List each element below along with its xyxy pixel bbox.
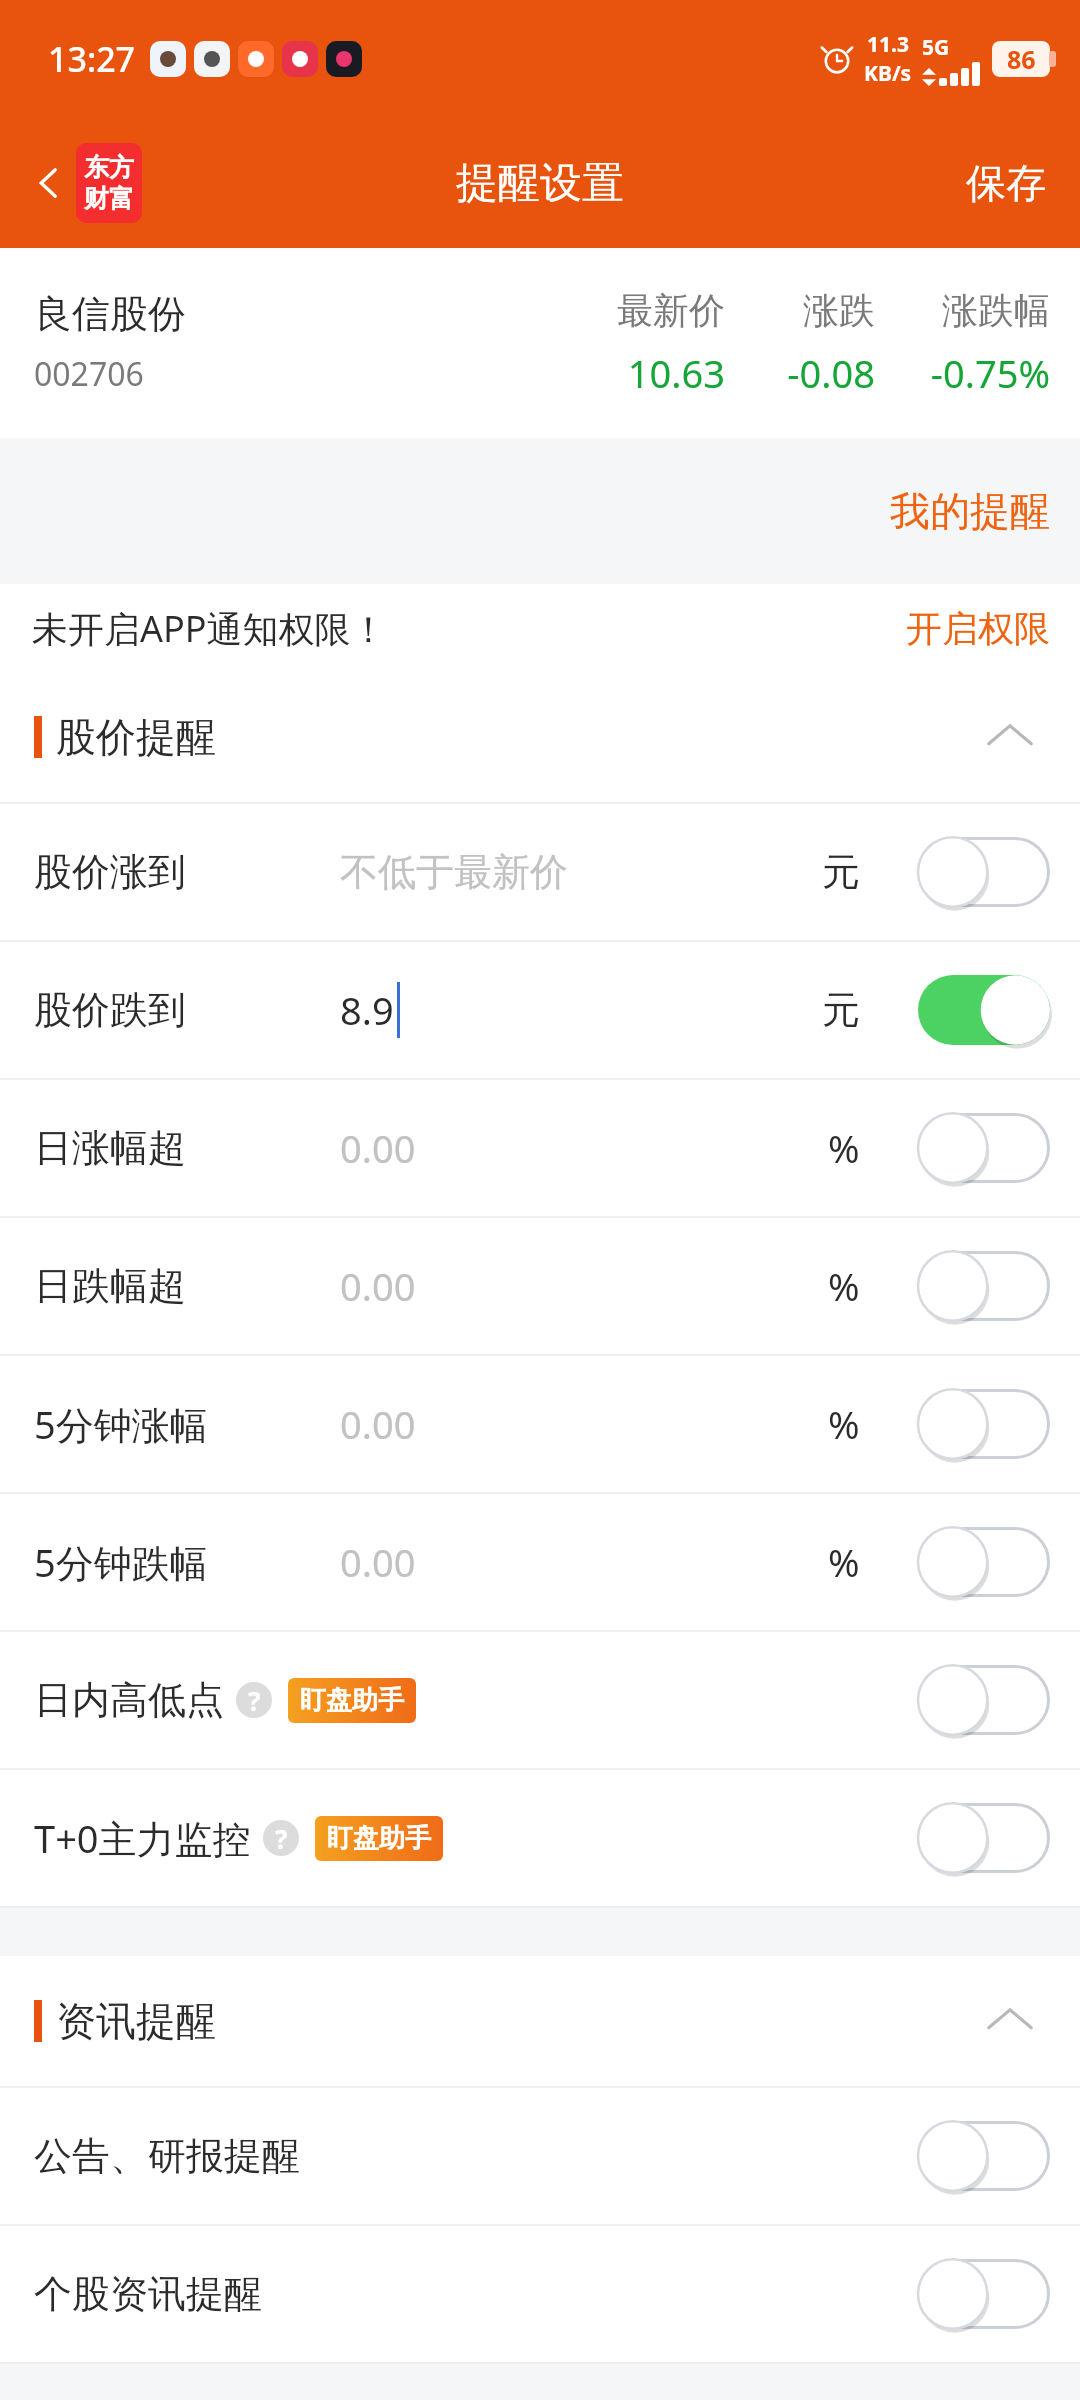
staticText: 13:27: [48, 36, 136, 82]
button[interactable]: 盯盘助手: [288, 1678, 416, 1723]
button[interactable]: 股价提醒: [0, 672, 1080, 802]
staticText: 5G: [922, 33, 950, 62]
staticText: -0.75%: [930, 347, 1050, 399]
button[interactable]: 8.9: [340, 982, 400, 1038]
staticText: 11.3: [867, 30, 909, 59]
staticText: 0.00: [340, 1260, 416, 1312]
staticText: 5分钟涨幅: [34, 1398, 208, 1450]
staticText: 资讯提醒: [56, 1996, 216, 2046]
staticText: 8.9: [340, 984, 394, 1036]
staticText: 开启权限: [906, 606, 1050, 651]
staticText: 我的提醒: [890, 486, 1050, 536]
staticText: 未开启APP通知权限！: [32, 604, 387, 653]
staticText: 日跌幅超: [34, 1262, 186, 1310]
staticText: 公告、研报提醒: [34, 2132, 300, 2180]
staticText: ?: [275, 1821, 288, 1856]
staticText: 涨跌幅: [942, 288, 1050, 333]
staticText: 5分钟跌幅: [34, 1536, 208, 1588]
other: 折叠: [982, 1993, 1038, 2049]
button[interactable]: 盯盘助手: [315, 1816, 443, 1861]
staticText: 东方: [84, 152, 134, 183]
staticText: 盯盘助手: [300, 1684, 404, 1717]
button[interactable]: 说明: [263, 1820, 299, 1856]
button[interactable]: 开启: [918, 975, 1050, 1045]
staticText: KB/s: [864, 59, 912, 88]
staticText: 个股资讯提醒: [34, 2270, 262, 2318]
button[interactable]: 关闭: [918, 837, 1050, 907]
button[interactable]: 关闭: [918, 1665, 1050, 1735]
staticText: 涨跌: [803, 288, 875, 333]
button[interactable]: 说明: [236, 1682, 272, 1718]
staticText: 0.00: [340, 1122, 416, 1174]
staticText: %: [828, 1536, 860, 1588]
button[interactable]: 0.00: [340, 1398, 416, 1450]
button[interactable]: 关闭: [918, 1527, 1050, 1597]
staticText: 良信股份: [34, 290, 186, 338]
staticText: 10.63: [627, 347, 725, 399]
staticText: 86: [1007, 42, 1036, 76]
button[interactable]: 关闭: [918, 2259, 1050, 2329]
staticText: 盯盘助手: [327, 1822, 431, 1855]
button[interactable]: 资讯提醒: [0, 1956, 1080, 2086]
button[interactable]: 0.00: [340, 1260, 416, 1312]
button[interactable]: 关闭: [918, 1251, 1050, 1321]
button[interactable]: 不低于最新价: [340, 848, 568, 896]
staticText: %: [828, 1398, 860, 1450]
staticText: 元: [822, 848, 860, 896]
button[interactable]: 关闭: [918, 1803, 1050, 1873]
staticText: 0.00: [340, 1536, 416, 1588]
staticText: 不低于最新价: [340, 848, 568, 896]
button[interactable]: 关闭: [918, 1113, 1050, 1183]
button[interactable]: 保存: [932, 144, 1080, 222]
button[interactable]: 关闭: [918, 1389, 1050, 1459]
staticText: 提醒设置: [456, 157, 624, 210]
staticText: 股价跌到: [34, 986, 186, 1034]
staticText: 日内高低点: [34, 1676, 224, 1724]
other: 折叠: [982, 709, 1038, 765]
staticText: 元: [822, 986, 860, 1034]
staticText: ?: [248, 1683, 261, 1718]
button[interactable]: 开启权限: [876, 594, 1080, 663]
staticText: %: [828, 1260, 860, 1312]
staticText: T+0主力监控: [34, 1812, 251, 1864]
staticText: 0.00: [340, 1398, 416, 1450]
button[interactable]: 0.00: [340, 1536, 416, 1588]
staticText: %: [828, 1122, 860, 1174]
button[interactable]: 返回 东方财富: [20, 133, 150, 233]
staticText: 002706: [34, 352, 144, 396]
staticText: -0.08: [787, 347, 875, 399]
staticText: 保存: [966, 158, 1046, 208]
button[interactable]: 我的提醒: [860, 468, 1080, 554]
button[interactable]: 0.00: [340, 1122, 416, 1174]
staticText: 股价涨到: [34, 848, 186, 896]
button[interactable]: 关闭: [918, 2121, 1050, 2191]
staticText: 最新价: [617, 288, 725, 333]
staticText: 财富: [84, 183, 134, 214]
staticText: 日涨幅超: [34, 1124, 186, 1172]
staticText: 股价提醒: [56, 712, 216, 762]
